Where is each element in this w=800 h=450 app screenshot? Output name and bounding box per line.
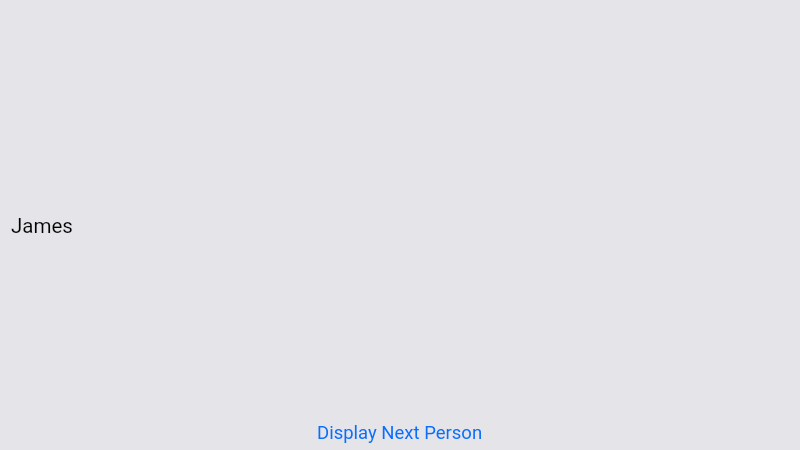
- button[interactable]: Display Next Person: [0, 410, 800, 450]
- staticText: Display Next Person: [317, 422, 483, 444]
- staticText: James: [11, 214, 73, 238]
